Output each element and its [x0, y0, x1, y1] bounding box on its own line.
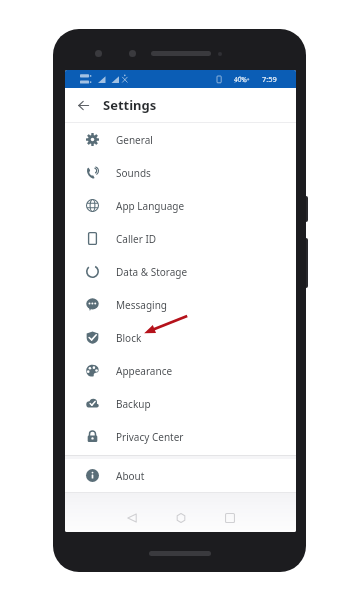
button[interactable]: Sounds	[65, 156, 296, 189]
button[interactable]: Privacy Center	[65, 420, 296, 453]
staticText: Appearance	[116, 364, 173, 378]
staticText: App Language	[116, 199, 185, 213]
staticText: Privacy Center	[116, 430, 184, 444]
staticText: Sounds	[116, 166, 151, 180]
staticText: Data & Storage	[116, 265, 188, 279]
button[interactable]: Home	[171, 508, 191, 528]
button[interactable]: Messaging	[65, 288, 296, 321]
staticText: 7:59	[262, 74, 277, 84]
staticText: Messaging	[116, 298, 167, 312]
button[interactable]: Backup	[65, 387, 296, 420]
button[interactable]: General	[65, 123, 296, 156]
button[interactable]: Appearance	[65, 354, 296, 387]
button[interactable]: Block	[65, 321, 296, 354]
button[interactable]: Back	[73, 95, 94, 116]
staticText: General	[116, 133, 153, 147]
staticText: Caller ID	[116, 232, 157, 246]
button[interactable]: About	[65, 459, 296, 492]
staticText: About	[116, 469, 145, 483]
button[interactable]: Caller ID	[65, 222, 296, 255]
button[interactable]: Data & Storage	[65, 255, 296, 288]
staticText: Backup	[116, 397, 151, 411]
button[interactable]: Back	[122, 508, 142, 528]
staticText: Block	[116, 331, 142, 345]
staticText: 40%	[234, 75, 247, 84]
button[interactable]: Recents	[220, 508, 240, 528]
button[interactable]: App Language	[65, 189, 296, 222]
staticText: Settings	[103, 96, 157, 114]
